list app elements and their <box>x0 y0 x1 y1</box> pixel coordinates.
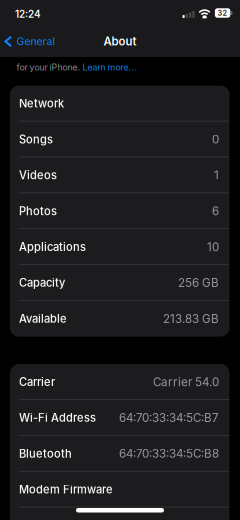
staticText: Wi-Fi Address <box>19 411 96 424</box>
button[interactable]: Capacity <box>10 265 229 301</box>
staticText: 64:70:33:34:5C:B8 <box>119 447 219 461</box>
button[interactable]: Wi-Fi Address <box>10 400 229 436</box>
button[interactable]: Applications <box>10 229 229 265</box>
staticText: 10 <box>207 240 219 254</box>
button[interactable]: Videos <box>10 157 229 193</box>
button[interactable]: Network <box>10 86 229 121</box>
staticText: Modem Firmware <box>19 483 113 496</box>
staticText: 6 <box>212 204 219 218</box>
staticText: Carrier 54.0 <box>153 375 219 389</box>
staticText: 213.83 GB <box>163 312 219 326</box>
staticText: 32 <box>218 9 228 17</box>
staticText: Capacity <box>19 276 65 289</box>
button[interactable]: Modem Firmware <box>10 472 229 507</box>
staticText: Available <box>19 312 67 325</box>
button[interactable]: Carrier <box>10 364 229 400</box>
staticText: 64:70:33:34:5C:B7 <box>119 411 219 425</box>
staticText: Songs <box>19 133 53 146</box>
staticText: General <box>16 35 55 48</box>
staticText: Videos <box>19 169 57 182</box>
staticText: 0 <box>212 132 219 146</box>
staticText: Carrier <box>19 375 55 389</box>
button[interactable]: Learn more... <box>82 62 137 72</box>
button[interactable]: Songs <box>10 121 229 157</box>
staticText: for your iPhone. <box>16 62 82 72</box>
button[interactable]: Bluetooth <box>10 436 229 472</box>
button[interactable]: Available <box>10 301 229 337</box>
staticText: Applications <box>19 240 86 254</box>
staticText: Learn more... <box>82 62 137 72</box>
staticText: Bluetooth <box>19 447 72 460</box>
button[interactable]: Photos <box>10 193 229 229</box>
staticText: 1 <box>214 168 219 182</box>
staticText: Network <box>19 97 64 110</box>
staticText: About <box>103 35 136 48</box>
staticText: 256 GB <box>178 276 219 290</box>
staticText: 12:24 <box>15 8 41 20</box>
button[interactable]: Back to General <box>0 26 52 39</box>
staticText: Photos <box>19 204 57 218</box>
